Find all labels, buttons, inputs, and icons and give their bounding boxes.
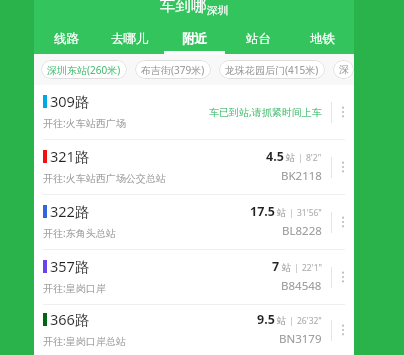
staticText: 龙珠花园后门(415米) [225,63,319,77]
staticText: 4.5 [266,148,284,165]
button[interactable]: 附近 [162,21,226,54]
button[interactable]: 357路 [34,250,354,304]
button[interactable]: More options [332,305,354,355]
staticText: 去哪儿 [111,31,149,47]
button[interactable]: More options [332,195,354,249]
staticText: 357路 [50,256,90,276]
button[interactable]: 深圳东站(260米) [41,60,127,79]
staticText: | [298,151,304,164]
staticText: 站 [277,315,287,327]
staticText: 车到哪 [160,0,207,16]
staticText: 站 [277,207,287,219]
staticText: BK2118 [281,168,322,184]
staticText: 站 [286,152,296,164]
staticText: 321路 [50,146,90,166]
staticText: | [289,206,295,219]
button[interactable]: 322路 [34,195,354,249]
staticText: 开往:火车站西广场公交总站 [43,171,166,185]
staticText: 布吉街(379米) [141,63,205,77]
staticText: B84548 [281,278,322,294]
button[interactable]: 站台 [226,21,290,54]
staticText: 开往:火车站西广场 [43,116,126,130]
staticText: | [294,261,300,274]
staticText: 开往:皇岗口岸总站 [43,334,126,348]
staticText: BN3179 [279,331,322,347]
staticText: 站 [282,262,292,274]
button[interactable]: 309路 [34,85,354,139]
staticText: 深圳北站(812米) [339,63,348,76]
staticText: 附近 [182,31,207,47]
staticText: 地铁 [310,31,335,47]
button[interactable]: 龙珠花园后门(415米) [219,60,325,79]
button[interactable]: 321路 [34,140,354,194]
staticText: 7 [272,258,280,275]
staticText: 366路 [50,309,90,329]
staticText: 26'32" [297,315,322,327]
staticText: 322路 [50,201,90,221]
button[interactable]: More options [332,250,354,304]
staticText: 站台 [246,31,271,47]
button[interactable]: 去哪儿 [98,21,162,54]
staticText: 开往:东角头总站 [43,226,116,240]
staticText: 深圳 [207,4,228,17]
staticText: 开往:皇岗口岸 [43,281,106,295]
staticText: 17.5 [250,203,275,220]
button[interactable]: 布吉街(379米) [135,60,211,79]
staticText: 31'56" [297,207,322,219]
staticText: 22'1" [302,262,322,274]
button[interactable]: 深圳北站(812米) [333,60,354,79]
button[interactable]: 线路 [34,21,98,54]
button[interactable]: More options [332,85,354,139]
staticText: 车已到站,请抓紧时间上车 [209,105,322,119]
staticText: 309路 [50,91,90,111]
button[interactable]: 366路 [34,305,354,355]
staticText: 线路 [54,31,79,47]
staticText: 深圳东站(260米) [47,63,121,77]
staticText: BL8228 [282,223,322,239]
staticText: | [289,314,295,327]
button[interactable]: More options [332,140,354,194]
staticText: 8'2" [306,152,322,164]
staticText: 9.5 [257,311,275,328]
button[interactable]: 地铁 [290,21,354,54]
